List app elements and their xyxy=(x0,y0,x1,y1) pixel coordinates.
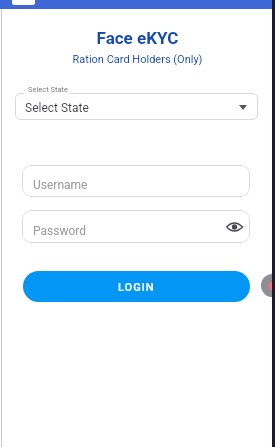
button[interactable]: Assistant xyxy=(261,274,275,297)
staticText: Username xyxy=(33,178,88,192)
staticText: Ration Card Holders (Only) xyxy=(0,53,275,66)
button[interactable]: Username xyxy=(22,165,250,197)
button[interactable]: Toggle password visibility xyxy=(224,217,244,237)
staticText: Face eKYC xyxy=(0,28,275,48)
staticText: Select State xyxy=(28,85,68,94)
button[interactable]: Select State xyxy=(15,93,258,120)
button[interactable]: Password xyxy=(22,210,250,243)
staticText: Select State xyxy=(25,101,89,115)
staticText: Password xyxy=(33,224,87,238)
staticText: LOGIN xyxy=(118,281,155,294)
button[interactable]: LOGIN xyxy=(23,271,250,302)
